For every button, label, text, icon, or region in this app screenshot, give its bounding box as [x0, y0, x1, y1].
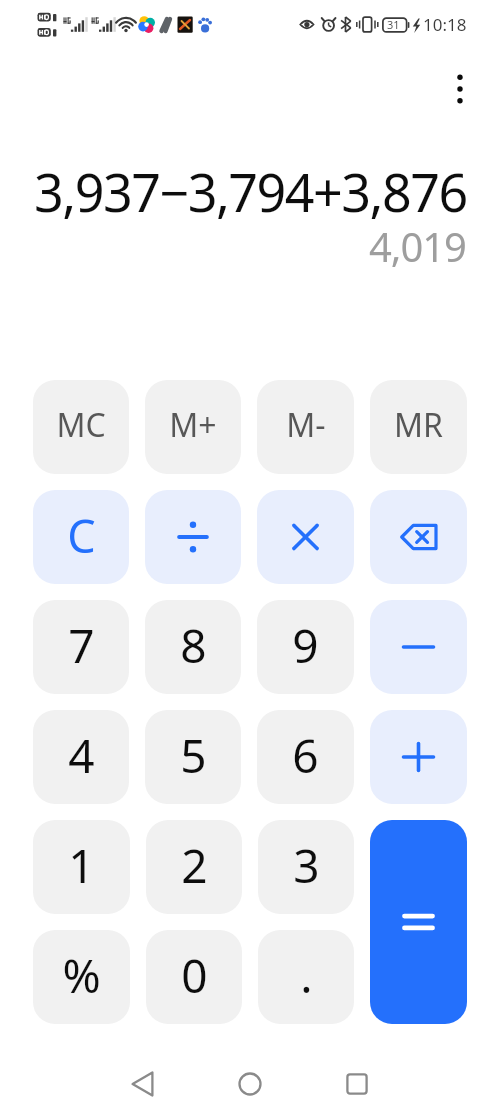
staticText: % — [62, 944, 101, 1007]
button[interactable]: C — [33, 490, 129, 584]
staticText: C — [67, 505, 96, 566]
button[interactable]: M- — [257, 380, 354, 474]
button[interactable]: 1 — [33, 820, 130, 914]
button[interactable]: Divide — [145, 490, 241, 584]
staticText: MC — [56, 403, 106, 447]
staticText: 9 — [292, 614, 319, 677]
button[interactable]: Home — [217, 1063, 283, 1104]
staticText: 3 — [293, 834, 320, 897]
staticText: 4,019 — [369, 219, 466, 271]
staticText: 8 — [180, 614, 207, 677]
staticText: 4 — [68, 724, 95, 787]
button[interactable]: % — [33, 930, 130, 1024]
staticText: 10:18 — [423, 13, 467, 36]
button[interactable]: Minus — [370, 600, 467, 694]
staticText: 5 — [180, 724, 207, 787]
staticText: 2 — [181, 834, 208, 897]
button[interactable]: 2 — [146, 820, 242, 914]
button[interactable]: MC — [33, 380, 129, 474]
button[interactable]: More options — [438, 67, 482, 111]
staticText: M- — [286, 403, 326, 447]
staticText: M+ — [169, 403, 217, 447]
button[interactable]: Equals — [370, 820, 467, 1024]
button[interactable]: 8 — [145, 600, 241, 694]
button[interactable]: Recents — [324, 1063, 390, 1104]
staticText: . — [300, 944, 313, 1007]
button[interactable]: Backspace — [370, 490, 467, 584]
staticText: 0 — [181, 944, 208, 1007]
staticText: 31 — [387, 17, 400, 32]
staticText: 1 — [68, 834, 95, 897]
button[interactable]: M+ — [145, 380, 241, 474]
button[interactable]: 5 — [145, 710, 241, 804]
staticText: MR — [394, 403, 443, 447]
button[interactable]: 6 — [257, 710, 354, 804]
button[interactable]: Multiply — [257, 490, 354, 584]
button[interactable]: . — [258, 930, 354, 1024]
button[interactable]: 7 — [33, 600, 129, 694]
staticText: 7 — [68, 614, 95, 677]
button[interactable]: Back — [110, 1063, 176, 1104]
button[interactable]: 3 — [258, 820, 354, 914]
button[interactable]: Plus — [370, 710, 467, 804]
button[interactable]: 4 — [33, 710, 129, 804]
button[interactable]: 9 — [257, 600, 354, 694]
staticText: 3,937−3,794+3,876 — [34, 156, 467, 222]
button[interactable]: 0 — [146, 930, 242, 1024]
button[interactable]: MR — [370, 380, 467, 474]
staticText: 6 — [292, 724, 319, 787]
